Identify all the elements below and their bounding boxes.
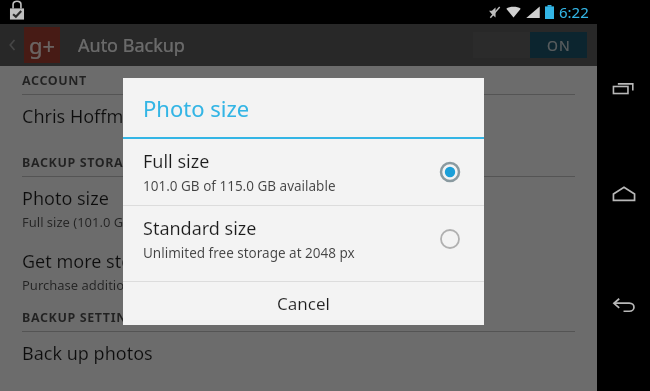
button[interactable]: Back xyxy=(602,283,646,327)
button[interactable]: Get more storage xyxy=(0,240,597,303)
button[interactable]: ON xyxy=(473,32,587,58)
staticText: Full size xyxy=(143,149,210,174)
staticText: BACKUP STORAGE xyxy=(22,154,141,171)
staticText: 6:22 xyxy=(559,2,589,22)
button[interactable]: Full size xyxy=(123,139,484,205)
staticText: Purchase additional Google Drive storage xyxy=(22,276,276,294)
staticText: Get more storage xyxy=(22,249,171,274)
staticText: Unlimited free storage at 2048 px xyxy=(143,244,355,262)
staticText: Auto Backup xyxy=(78,33,185,58)
staticText: Photo size xyxy=(143,93,250,123)
button[interactable]: Back up photos xyxy=(0,332,597,375)
staticText: BACKUP SETTINGS xyxy=(22,309,145,326)
staticText: Chris Hoffman xyxy=(22,104,145,129)
button[interactable]: Up xyxy=(6,38,20,52)
button[interactable]: Standard size xyxy=(123,206,484,272)
staticText: Standard size xyxy=(143,216,257,241)
staticText: Back up photos xyxy=(22,341,153,366)
staticText: Full size (101.0 GB of 115.0 GB availabl… xyxy=(22,213,267,231)
staticText: g+ xyxy=(29,30,56,60)
button[interactable]: Chris Hoffman xyxy=(0,95,597,138)
staticText: ON xyxy=(547,36,571,55)
staticText: Photo size xyxy=(22,186,109,211)
staticText: ACCOUNT xyxy=(22,72,87,89)
button[interactable]: Home xyxy=(602,173,646,217)
staticText: Cancel xyxy=(277,292,330,315)
button[interactable]: Photo size xyxy=(0,177,597,240)
button[interactable]: Cancel xyxy=(123,282,484,325)
button[interactable]: Recents xyxy=(602,68,646,112)
staticText: 101.0 GB of 115.0 GB available xyxy=(143,177,336,195)
